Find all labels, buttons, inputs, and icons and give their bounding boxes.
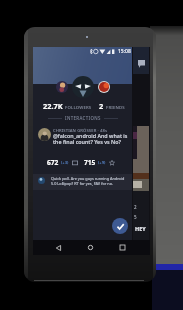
staticText: CHRISTIAN GRÖSSER · 48s: [53, 128, 108, 134]
staticText: 5.0 Lollipop? RT for yes, FAV for no.: [51, 181, 113, 186]
staticText: (+3): [61, 160, 69, 166]
staticText: Quick poll. Are you guys running Android: [51, 176, 125, 181]
staticText: FOLLOWERS: [65, 104, 92, 110]
staticText: 22.7K: [43, 101, 63, 111]
staticText: 2: [99, 101, 104, 111]
button[interactable]: Home: [83, 240, 98, 255]
staticText: 2: [134, 204, 137, 210]
staticText: FRIENDS: [106, 104, 125, 110]
staticText: 15:08: [118, 48, 131, 55]
staticText: 5: [134, 214, 137, 220]
staticText: @falcon_android And what is: [53, 132, 128, 139]
button[interactable]: Confirm: [112, 218, 128, 234]
button[interactable]: Messages: [138, 60, 145, 68]
staticText: INTERACTIONS: [65, 115, 101, 121]
staticText: (+9): [98, 160, 106, 166]
staticText: the final count? Yes vs No?: [53, 138, 121, 145]
staticText: HEY: [135, 225, 146, 232]
button[interactable]: Favorite: [109, 160, 115, 166]
button[interactable]: Recent apps: [115, 240, 130, 255]
button[interactable]: Profile: [72, 76, 94, 98]
button[interactable]: Back: [51, 240, 66, 255]
button[interactable]: Friend: [98, 81, 110, 93]
button[interactable]: Quick poll. Are you guys running Android: [33, 174, 132, 190]
staticText: 672: [47, 158, 59, 167]
staticText: 715: [84, 158, 96, 167]
button[interactable]: Retweet: [72, 160, 78, 166]
button[interactable]: Friend: [56, 81, 68, 93]
button[interactable]: CHRISTIAN GRÖSSER · 48s: [33, 121, 132, 166]
